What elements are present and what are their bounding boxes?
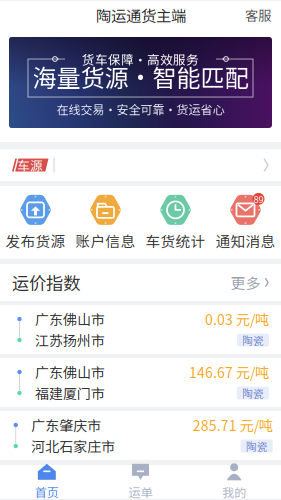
staticText: 车货统计 [145,230,205,251]
staticText: 发布货源 [5,230,65,251]
staticText: 首页 [35,483,59,500]
button[interactable]: 广东肇庆市 [0,411,281,460]
staticText: 陶瓷 [242,332,264,348]
staticText: 广东肇庆市 [31,415,101,435]
staticText: 285.71 元/吨 [193,415,273,435]
button[interactable]: 运单 [94,463,187,500]
staticText: 在线交易·安全可靠·货运省心 [56,100,224,118]
staticText: 河北石家庄市 [31,436,115,456]
staticText: 运单 [128,483,152,500]
button[interactable]: 89 [210,194,280,251]
button[interactable]: 我的 [187,463,281,500]
button[interactable]: 广东佛山市 [0,305,281,354]
button[interactable]: 首页 [0,463,94,500]
staticText: 陶运通货主端 [96,4,186,26]
button[interactable]: 车货统计 [140,194,210,251]
button[interactable]: 发布货源 [0,194,70,251]
button[interactable]: 更多 [231,272,269,293]
staticText: 福建厦门市 [35,383,105,403]
staticText: 0.03 元/吨 [205,309,269,329]
staticText: 146.67 元/吨 [189,362,269,382]
staticText: 车源 [17,156,43,174]
staticText: 更多 [231,272,261,293]
staticText: 江苏扬州市 [35,330,105,350]
staticText: 89 [253,192,263,206]
staticText: 陶瓷 [246,438,268,454]
staticText: 陶瓷 [242,385,264,401]
staticText: 运价指数 [12,270,80,295]
staticText: 通知消息 [215,230,275,251]
button[interactable]: 客服 [235,1,281,29]
staticText: 我的 [222,483,246,500]
staticText: 货车保障·高效服务 [82,50,199,68]
staticText: 广东佛山市 [35,309,105,329]
button[interactable]: 广东佛山市 [0,358,281,407]
staticText: 账户信息 [75,230,135,251]
staticText: 广东佛山市 [35,362,105,382]
staticText: 海量货源·智能匹配 [32,59,248,94]
button[interactable]: 车源 [0,149,281,181]
button[interactable]: 账户信息 [70,194,140,251]
staticText: 客服 [245,5,271,25]
